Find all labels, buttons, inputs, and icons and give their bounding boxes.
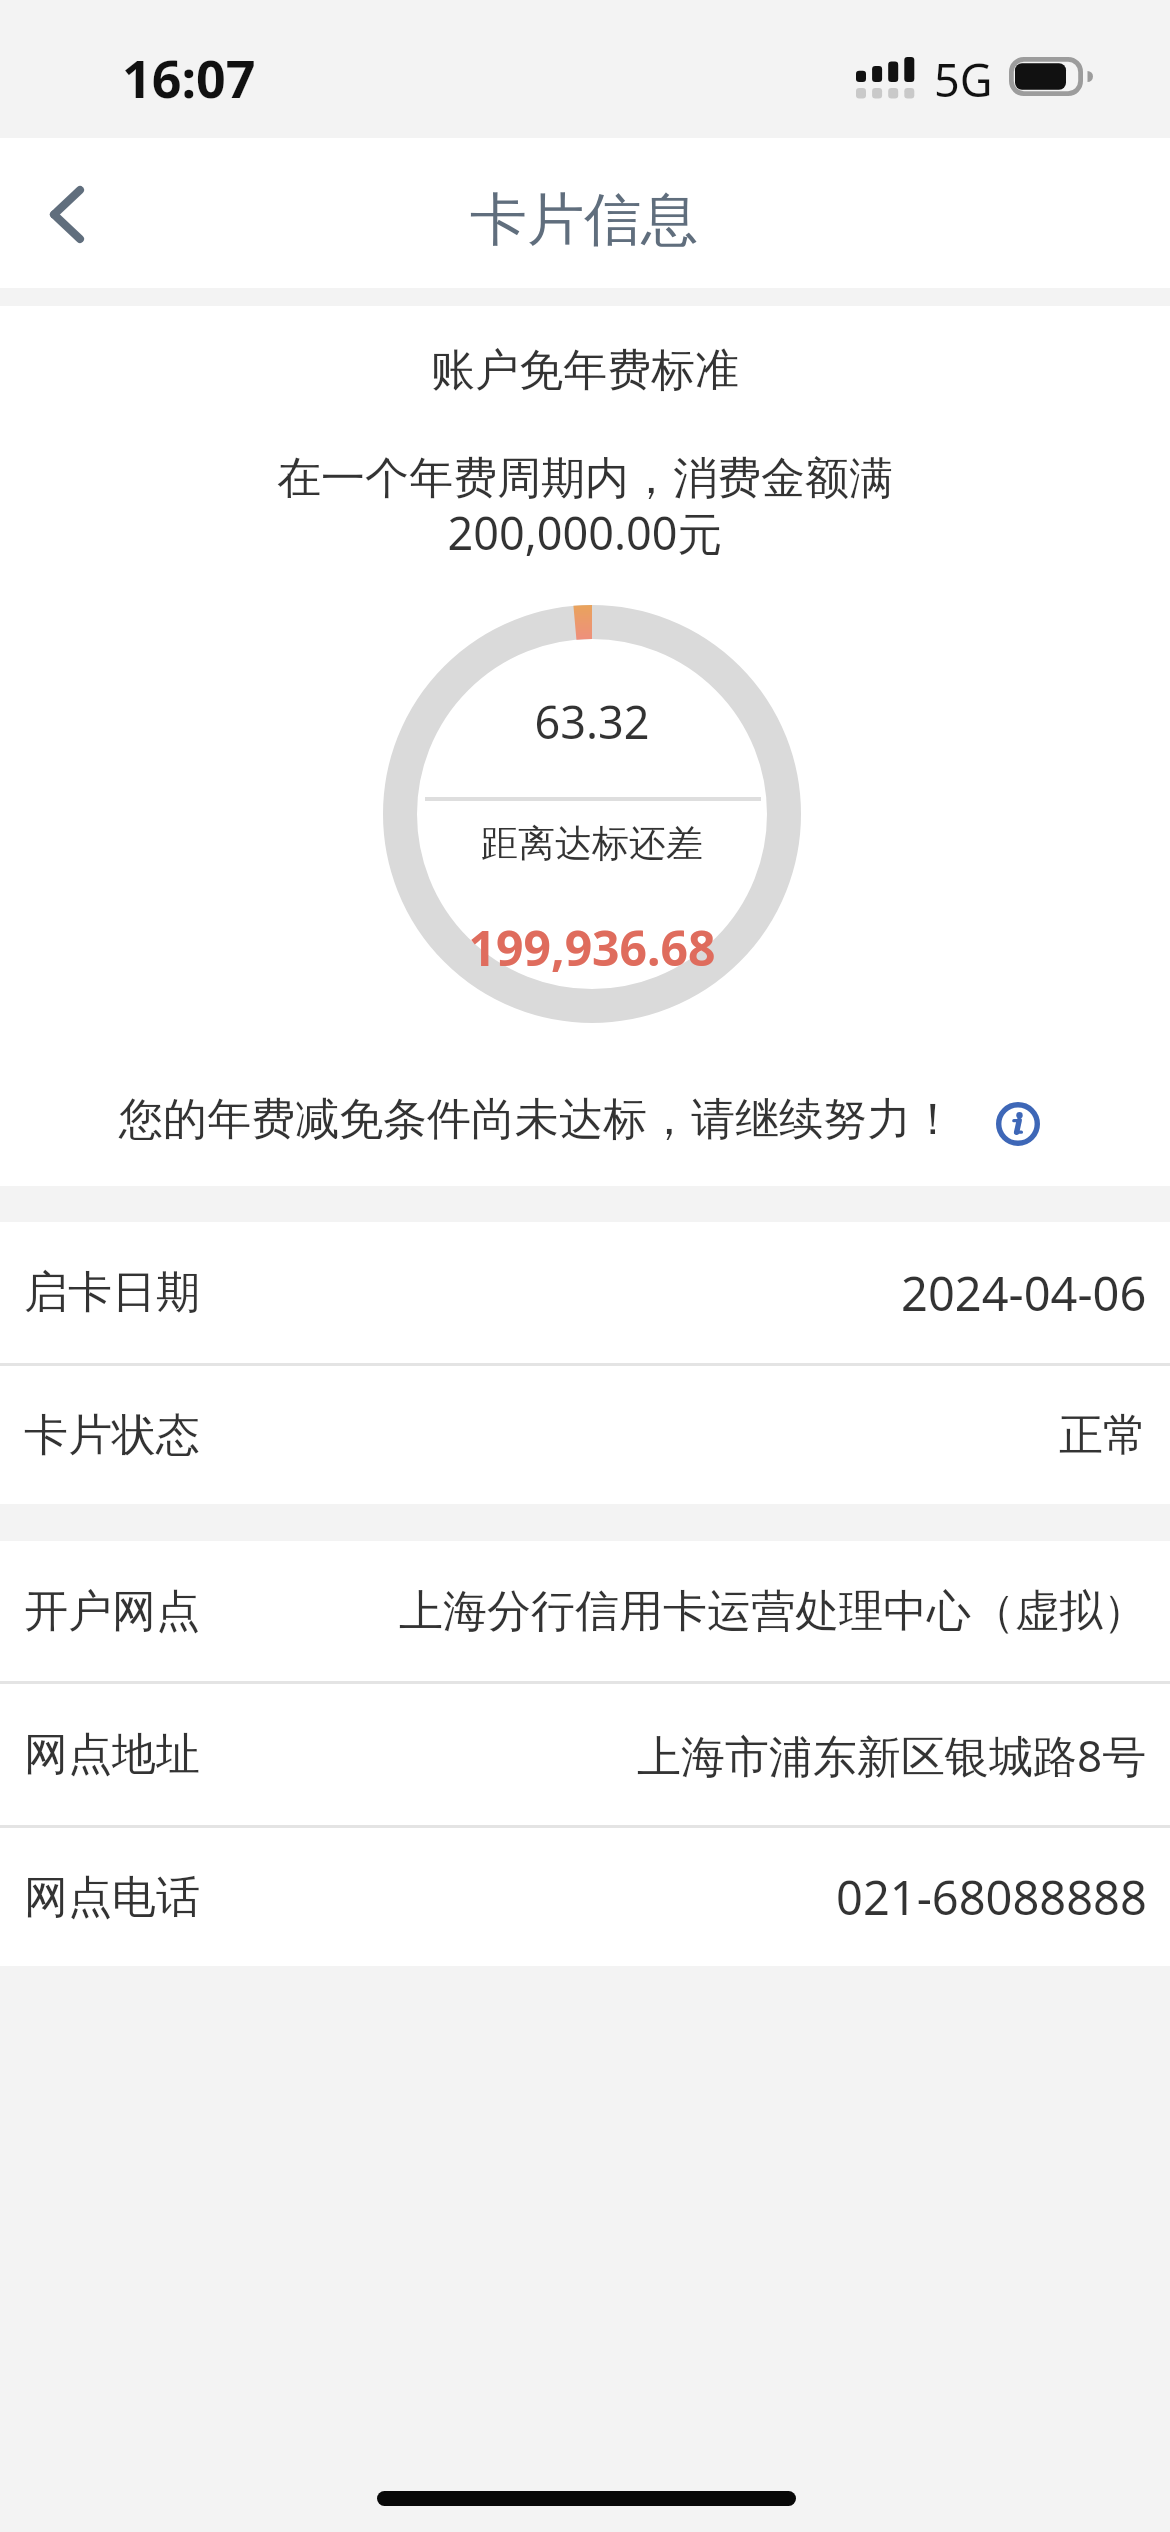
staticText: 200,000.00元	[0, 502, 1170, 563]
button[interactable]: Information about annual fee waiver	[989, 1095, 1047, 1153]
staticText: 启卡日期	[24, 1265, 200, 1320]
staticText: 199,936.68	[383, 915, 801, 980]
staticText: 账户免年费标准	[0, 343, 1170, 398]
staticText: 63.32	[383, 691, 801, 752]
button[interactable]: 开户网点	[0, 1541, 1170, 1681]
button[interactable]: 网点电话	[0, 1828, 1170, 1966]
staticText: 5G	[934, 49, 993, 110]
staticText: 开户网点	[24, 1584, 200, 1639]
staticText: 2024-04-06	[901, 1261, 1147, 1325]
staticText: 网点电话	[24, 1870, 200, 1925]
button[interactable]: 卡片状态	[0, 1366, 1170, 1504]
staticText: 正常	[1059, 1408, 1147, 1463]
button[interactable]: 启卡日期	[0, 1222, 1170, 1363]
staticText: 在一个年费周期内，消费金额满	[0, 451, 1170, 506]
staticText: 您的年费减免条件尚未达标，请继续努力！	[119, 1092, 955, 1147]
staticText: 上海市浦东新区银城路8号	[637, 1725, 1147, 1785]
staticText: 卡片信息	[470, 184, 698, 256]
staticText: 16:07	[122, 42, 256, 113]
staticText: 卡片状态	[24, 1408, 200, 1463]
staticText: 021-68088888	[836, 1865, 1147, 1929]
button[interactable]: 网点地址	[0, 1684, 1170, 1825]
button[interactable]: Back	[0, 138, 132, 288]
staticText: 距离达标还差	[383, 820, 801, 867]
staticText: 网点地址	[24, 1727, 200, 1782]
staticText: 上海分行信用卡运营处理中心（虚拟）	[399, 1584, 1147, 1639]
